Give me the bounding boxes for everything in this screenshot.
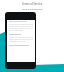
staticText: Read the agreement	[22, 8, 43, 11]
staticText: Terms of Service	[22, 2, 43, 6]
